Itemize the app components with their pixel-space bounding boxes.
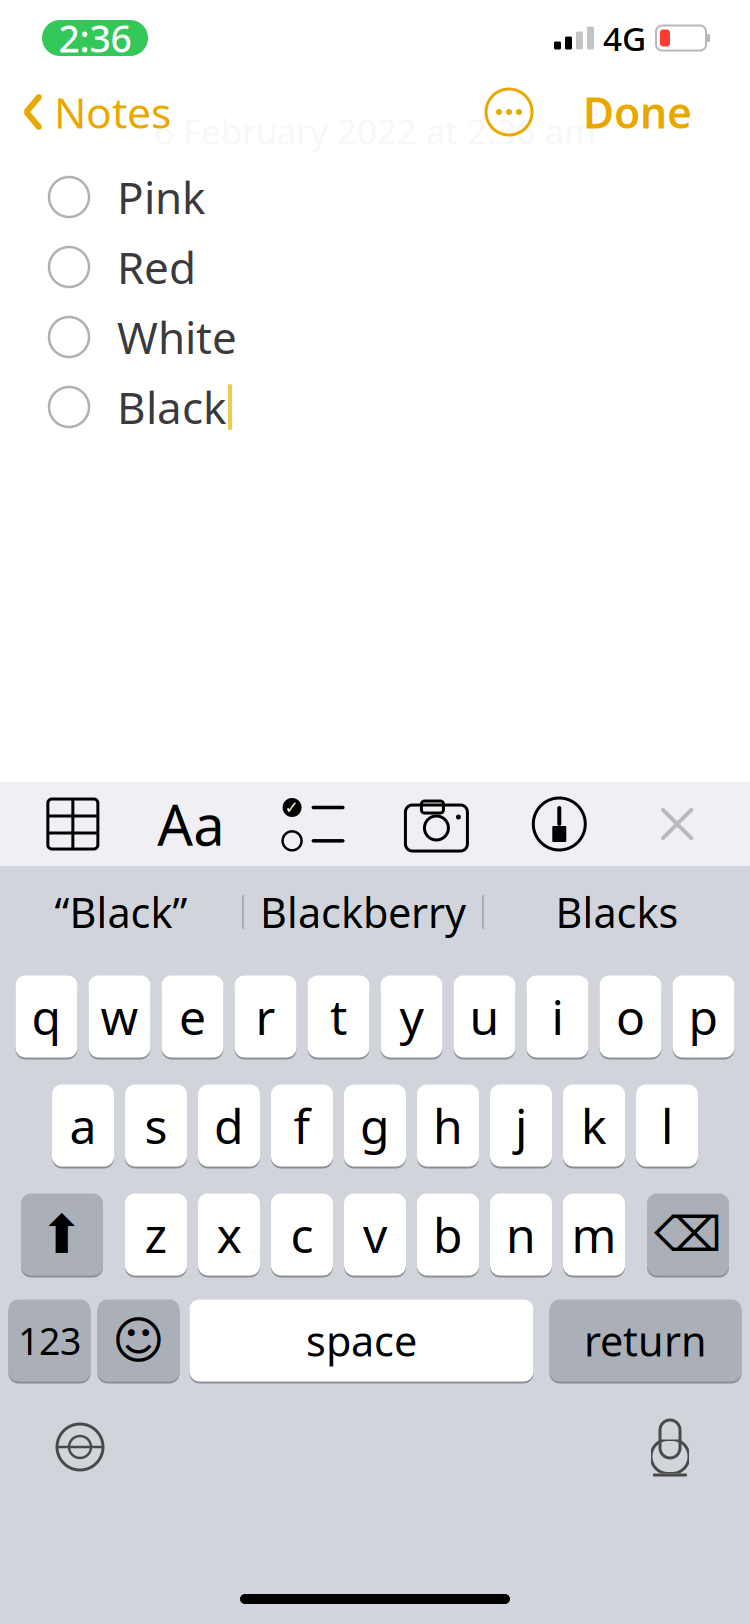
staticText: space <box>306 1313 417 1368</box>
button[interactable]: y <box>380 974 442 1059</box>
staticText: Black <box>117 378 226 436</box>
button[interactable]: n <box>490 1192 552 1277</box>
button[interactable]: Hide keyboard <box>637 789 717 859</box>
button[interactable]: return <box>549 1298 741 1383</box>
staticText: p <box>688 985 718 1048</box>
staticText: x <box>216 1203 241 1266</box>
button[interactable]: r <box>234 974 296 1059</box>
button[interactable]: Next keyboard <box>40 1407 120 1487</box>
staticText: i <box>551 985 563 1048</box>
staticText: k <box>581 1094 607 1157</box>
staticText: m <box>571 1203 616 1266</box>
staticText: u <box>469 985 499 1048</box>
staticText: 4G <box>603 16 646 60</box>
button[interactable]: u <box>453 974 515 1059</box>
button[interactable]: Checklist <box>269 789 359 859</box>
button[interactable]: j <box>490 1083 552 1168</box>
staticText: y <box>399 985 423 1048</box>
staticText: j <box>515 1094 527 1157</box>
button[interactable]: White <box>0 302 750 372</box>
button[interactable]: Black <box>0 372 750 442</box>
button[interactable]: k <box>563 1083 625 1168</box>
button[interactable]: space <box>189 1298 533 1383</box>
staticText: ⬆ <box>39 1204 84 1265</box>
staticText: return <box>584 1313 707 1368</box>
staticText: h <box>433 1094 463 1157</box>
button[interactable]: s <box>125 1083 187 1168</box>
button[interactable]: Emoji <box>97 1298 179 1383</box>
button[interactable]: Shift <box>21 1192 103 1277</box>
button[interactable]: Blackberry <box>244 872 482 952</box>
button[interactable]: w <box>88 974 150 1059</box>
staticText: r <box>255 985 275 1048</box>
staticText: f <box>293 1094 310 1157</box>
button[interactable]: Red <box>0 232 750 302</box>
staticText: “Black” <box>54 885 187 939</box>
button[interactable]: e <box>161 974 223 1059</box>
staticText: a <box>69 1094 96 1157</box>
staticText: ⌫ <box>654 1207 722 1262</box>
button[interactable]: b <box>417 1192 479 1277</box>
staticText: e <box>179 985 206 1048</box>
button[interactable]: x <box>198 1192 260 1277</box>
staticText: Aa <box>157 787 224 861</box>
button[interactable]: Pink <box>0 162 750 232</box>
staticText: n <box>506 1203 536 1266</box>
button[interactable]: f <box>271 1083 333 1168</box>
button[interactable]: i <box>526 974 588 1059</box>
staticText: 2:36 <box>58 13 131 63</box>
staticText: g <box>360 1094 390 1157</box>
staticText: o <box>616 985 645 1048</box>
staticText: 123 <box>18 1316 81 1365</box>
staticText: v <box>363 1203 387 1266</box>
staticText: Pink <box>117 168 205 226</box>
staticText: z <box>144 1203 167 1266</box>
button[interactable]: l <box>636 1083 698 1168</box>
button[interactable]: Insert table <box>33 789 113 859</box>
button[interactable]: More options <box>479 82 539 142</box>
button[interactable]: a <box>52 1083 114 1168</box>
button[interactable]: Blacks <box>484 872 750 952</box>
staticText: Blacks <box>555 885 678 939</box>
staticText: ✓ <box>285 798 300 817</box>
button[interactable]: z <box>125 1192 187 1277</box>
button[interactable]: “Black” <box>0 872 242 952</box>
staticText: 6 February 2022 at 2:36 am <box>154 108 596 154</box>
button[interactable]: d <box>198 1083 260 1168</box>
staticText: w <box>100 985 138 1048</box>
staticText: b <box>433 1203 463 1266</box>
button[interactable]: Notes <box>18 76 175 148</box>
staticText: ☺ <box>112 1312 165 1369</box>
button[interactable]: o <box>599 974 661 1059</box>
button[interactable]: Markup <box>514 789 604 859</box>
staticText: s <box>144 1094 167 1157</box>
staticText: l <box>661 1094 673 1157</box>
button[interactable]: Delete <box>647 1192 729 1277</box>
staticText: t <box>330 985 347 1048</box>
button[interactable]: Format text <box>146 789 236 859</box>
staticText: Red <box>117 238 196 296</box>
staticText: White <box>117 308 237 366</box>
staticText: d <box>214 1094 244 1157</box>
staticText: c <box>290 1203 313 1266</box>
button[interactable]: q <box>15 974 77 1059</box>
button[interactable]: m <box>563 1192 625 1277</box>
button[interactable]: Done <box>539 76 698 148</box>
staticText: Done <box>583 84 692 140</box>
button[interactable]: t <box>307 974 369 1059</box>
staticText: Blackberry <box>260 885 466 939</box>
button[interactable]: p <box>672 974 734 1059</box>
staticText: q <box>31 985 61 1048</box>
button[interactable]: Camera <box>391 789 481 859</box>
button[interactable]: 123 <box>8 1298 90 1383</box>
button[interactable]: g <box>344 1083 406 1168</box>
button[interactable]: v <box>344 1192 406 1277</box>
staticText: Notes <box>54 84 171 140</box>
button[interactable]: c <box>271 1192 333 1277</box>
button[interactable]: Dictation <box>630 1407 710 1487</box>
button[interactable]: h <box>417 1083 479 1168</box>
